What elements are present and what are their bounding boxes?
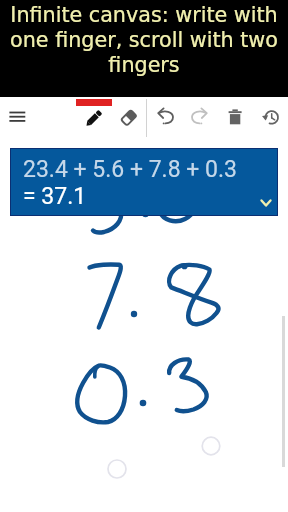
- staticText: 23.4 + 5.6 + 7.8 + 0.3: [23, 156, 237, 183]
- button[interactable]: 23.4 + 5.6 + 7.8 + 0.3: [11, 149, 277, 215]
- button[interactable]: Undo: [149, 101, 181, 133]
- button[interactable]: Eraser: [113, 100, 145, 132]
- button[interactable]: Menu: [2, 100, 34, 132]
- button[interactable]: History: [255, 103, 287, 135]
- button[interactable]: Redo: [184, 101, 216, 133]
- button[interactable]: Pen: [78, 101, 110, 133]
- staticText: Infinite canvas: write with one finger, …: [5, 3, 283, 76]
- button[interactable]: Expand: [254, 191, 278, 215]
- staticText: = 37.1: [23, 183, 87, 210]
- button[interactable]: Delete: [219, 102, 251, 134]
